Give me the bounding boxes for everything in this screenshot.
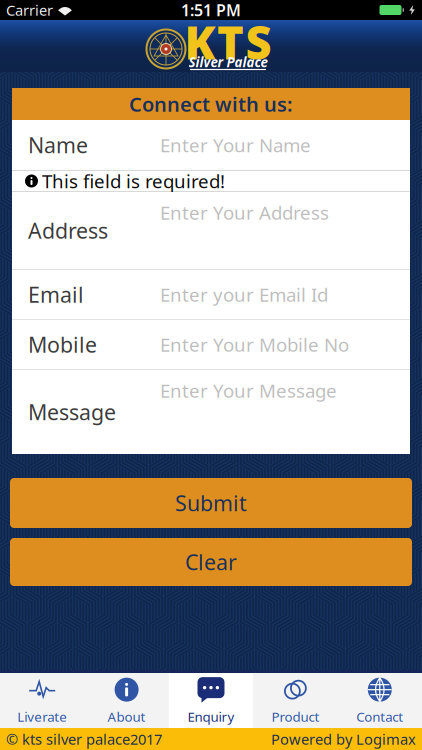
staticText: Connect with us: bbox=[129, 91, 293, 117]
staticText: Clear bbox=[185, 548, 237, 576]
button[interactable]: Email bbox=[12, 270, 410, 319]
button[interactable]: Liverate bbox=[0, 673, 84, 728]
staticText: Enter Your Mobile No bbox=[160, 332, 349, 357]
staticText: Product bbox=[271, 708, 319, 725]
button[interactable]: Name bbox=[12, 120, 410, 170]
staticText: Enter Your Message bbox=[160, 378, 337, 403]
staticText: Mobile bbox=[28, 330, 97, 359]
button[interactable]: Enquiry bbox=[169, 673, 253, 728]
button[interactable]: Product bbox=[253, 673, 338, 728]
staticText: Name bbox=[28, 131, 88, 159]
staticText: Contact bbox=[356, 708, 403, 725]
staticText: Email bbox=[28, 280, 84, 309]
button[interactable]: About bbox=[84, 673, 169, 728]
button[interactable]: Message bbox=[12, 370, 410, 454]
staticText: Powered by Logimax bbox=[271, 729, 416, 749]
staticText: Address bbox=[28, 216, 108, 245]
staticText: © kts silver palace2017 bbox=[6, 729, 162, 749]
staticText: 1:51 PM bbox=[181, 0, 241, 21]
staticText: Enter Your Name bbox=[160, 133, 311, 157]
button[interactable]: Mobile bbox=[12, 320, 410, 369]
staticText: Liverate bbox=[17, 708, 67, 725]
staticText: Message bbox=[28, 398, 116, 426]
staticText: Enter your Email Id bbox=[160, 282, 328, 307]
staticText: About bbox=[108, 708, 146, 725]
staticText: Enter Your Address bbox=[160, 200, 329, 225]
staticText: KTS bbox=[184, 12, 271, 72]
staticText: Enquiry bbox=[187, 708, 234, 725]
button[interactable]: Submit bbox=[10, 478, 412, 528]
button[interactable]: Clear bbox=[10, 538, 412, 586]
staticText: Submit bbox=[175, 489, 247, 517]
button[interactable]: Address bbox=[12, 192, 410, 269]
staticText: This field is required! bbox=[42, 169, 225, 193]
staticText: Carrier bbox=[6, 0, 53, 20]
button[interactable]: Contact bbox=[338, 673, 422, 728]
staticText: Silver Palace bbox=[188, 53, 267, 71]
